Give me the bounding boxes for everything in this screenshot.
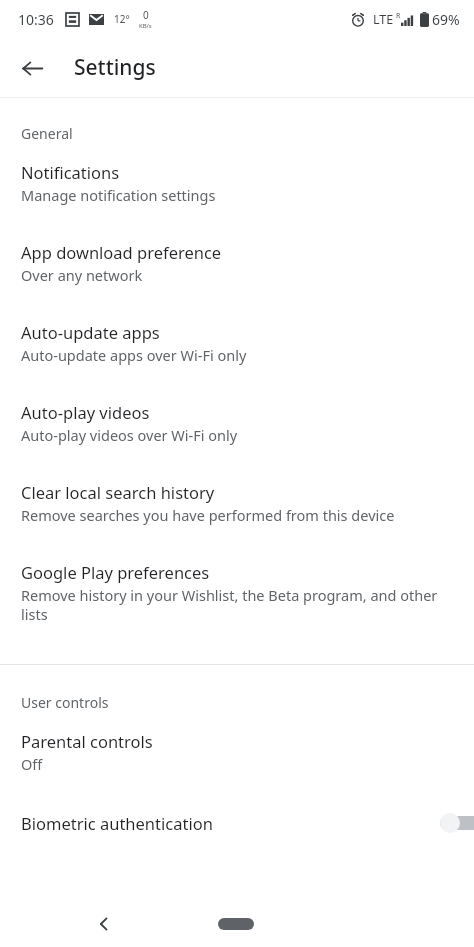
staticText: LTE [373, 11, 394, 28]
button[interactable]: Parental controls [0, 712, 474, 796]
button[interactable]: Biometric authentication toggle, off [440, 813, 474, 833]
staticText: Biometric authentication [21, 812, 213, 834]
button[interactable]: Biometric authentication [0, 796, 474, 848]
button[interactable]: Auto-update apps [0, 307, 474, 387]
staticText: Settings [74, 53, 156, 82]
staticText: Parental controls [21, 730, 153, 752]
staticText: Remove searches you have performed from … [21, 505, 395, 525]
button[interactable]: Notifications [0, 143, 474, 227]
staticText: R [396, 11, 401, 21]
staticText: Google Play preferences [21, 561, 210, 583]
staticText: 69% [432, 10, 460, 29]
button[interactable]: Google Play preferences [0, 547, 474, 650]
button[interactable]: Back [10, 46, 54, 90]
staticText: User controls [21, 693, 109, 712]
button[interactable]: Back [84, 904, 124, 944]
staticText: General [21, 124, 73, 143]
staticText: Over any network [21, 265, 143, 285]
staticText: Notifications [21, 161, 120, 183]
staticText: 10:36 [18, 10, 54, 29]
button[interactable]: Auto-play videos [0, 387, 474, 467]
staticText: 12° [114, 12, 130, 26]
staticText: Auto-play videos over Wi-Fi only [21, 425, 238, 445]
staticText: 0 [143, 8, 149, 22]
button[interactable]: Home [206, 911, 266, 937]
staticText: Remove history in your Wishlist, the Bet… [21, 585, 450, 624]
staticText: App download preference [21, 241, 222, 263]
staticText: Off [21, 754, 43, 774]
staticText: Auto-play videos [21, 401, 150, 423]
staticText: Auto-update apps over Wi-Fi only [21, 345, 247, 365]
button[interactable]: Clear local search history [0, 467, 474, 547]
button[interactable]: App download preference [0, 227, 474, 307]
staticText: KB/s [139, 22, 152, 30]
staticText: Clear local search history [21, 481, 215, 503]
staticText: Auto-update apps [21, 321, 160, 343]
staticText: Manage notification settings [21, 185, 216, 205]
